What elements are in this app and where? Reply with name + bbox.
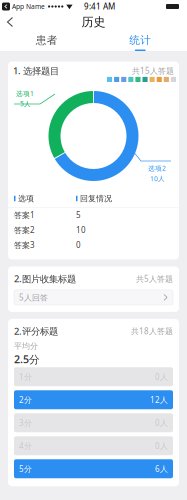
staticText: 平均分 (14, 341, 38, 351)
button[interactable]: Back (0, 13, 20, 31)
staticText: 共5人答题 (136, 273, 173, 284)
staticText: 患者 (36, 34, 58, 47)
staticText: 共18人答题 (131, 326, 173, 336)
staticText: 选项1 (16, 89, 34, 98)
staticText: 3分 (19, 417, 32, 428)
staticText: 6人 (155, 463, 168, 474)
staticText: 5 (76, 210, 81, 220)
staticText: 共15人答题 (132, 65, 174, 76)
staticText: 1. 选择题目 (13, 64, 59, 77)
staticText: 5分 (19, 463, 32, 474)
button[interactable]: 患者 (0, 31, 93, 51)
staticText: 2分 (19, 394, 32, 405)
staticText: 统计 (129, 34, 151, 47)
staticText: 答案1 (14, 210, 35, 220)
staticText: 答案2 (14, 225, 35, 235)
staticText: 9:41 AM (84, 1, 115, 12)
staticText: 4分 (19, 440, 32, 451)
staticText: 12人 (150, 394, 168, 405)
button[interactable]: 5人回答 (14, 290, 173, 305)
staticText: 答案3 (14, 240, 35, 250)
staticText: App Name (12, 2, 45, 11)
staticText: 0 (76, 240, 81, 250)
staticText: 2.评分标题 (14, 325, 58, 337)
staticText: 选项2 (148, 164, 166, 173)
staticText: 选项 (18, 194, 34, 203)
staticText: 0人 (155, 417, 168, 428)
staticText: 5人 (20, 99, 31, 108)
staticText: 2.图片收集标题 (14, 272, 76, 285)
staticText: 2.5分 (14, 352, 40, 366)
staticText: 10人 (150, 174, 165, 183)
button[interactable]: 统计 (93, 31, 187, 51)
staticText: 回复情况 (80, 194, 112, 203)
staticText: 0人 (155, 371, 168, 382)
staticText: 历史 (81, 15, 105, 29)
staticText: 1分 (19, 371, 32, 382)
staticText: 5人回答 (19, 292, 48, 303)
staticText: 10 (76, 225, 86, 235)
staticText: 0人 (155, 440, 168, 451)
